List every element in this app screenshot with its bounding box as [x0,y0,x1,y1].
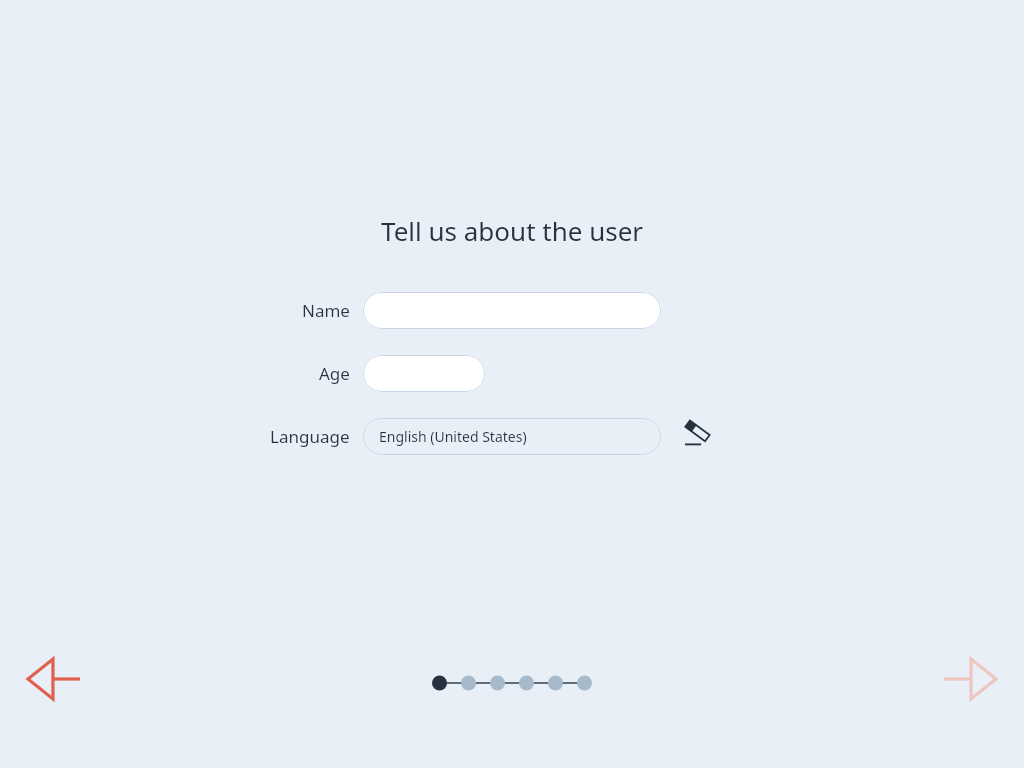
staticText: English (United States) [379,427,527,446]
button[interactable] [363,355,485,392]
button[interactable]: Edit language [680,416,716,452]
button[interactable] [363,292,661,329]
staticText: Name [302,299,350,322]
staticText: Age [319,362,350,385]
button[interactable]: Next [938,652,1002,706]
staticText: Tell us about the user [381,213,644,248]
button[interactable]: English (United States) [363,418,661,455]
button[interactable]: Back [22,652,86,706]
staticText: Language [270,425,350,448]
